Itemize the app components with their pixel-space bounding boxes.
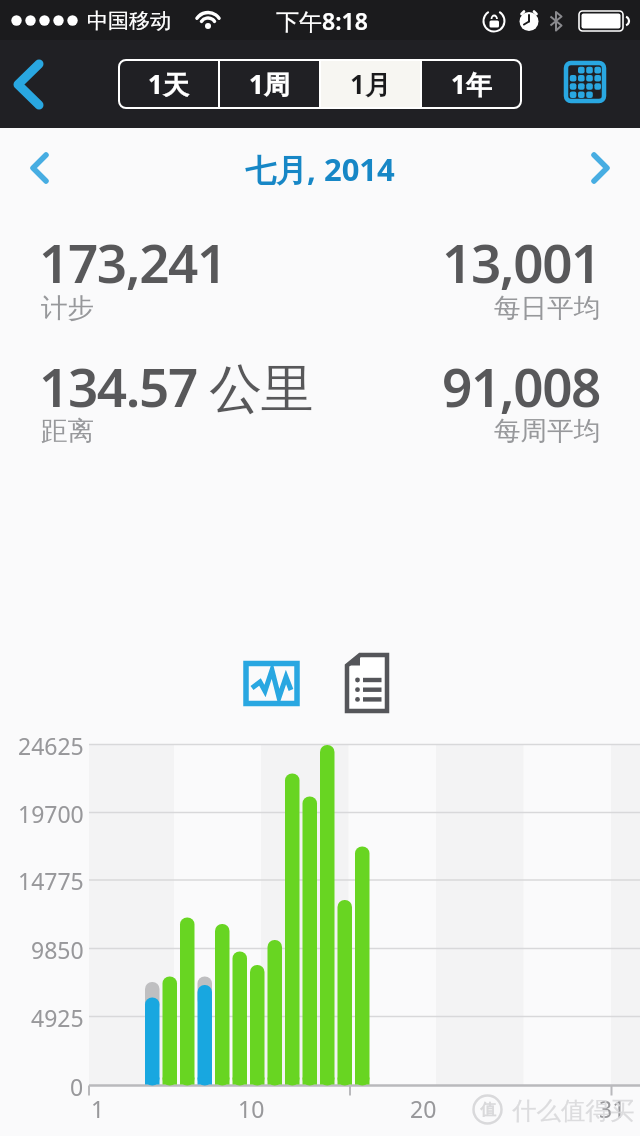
button[interactable] <box>582 144 622 192</box>
staticText: 计步 <box>41 291 94 324</box>
staticText: 下午8:18 <box>276 5 368 36</box>
staticText: 值 <box>480 1100 496 1120</box>
staticText: 19700 <box>18 798 84 829</box>
staticText: 10 <box>238 1093 265 1123</box>
staticText: 20 <box>410 1093 437 1123</box>
staticText: 七月, 2014 <box>245 148 395 190</box>
staticText: 每周平均 <box>494 414 600 447</box>
button[interactable] <box>243 658 301 708</box>
staticText: 什么值得买 <box>512 1095 635 1126</box>
button[interactable]: 1年 <box>421 59 522 109</box>
button[interactable] <box>564 61 606 103</box>
staticText: 每日平均 <box>494 291 600 324</box>
staticText: 91,008 <box>442 350 600 422</box>
staticText: 134.57 公里 <box>39 350 313 422</box>
staticText: 1 <box>91 1093 105 1123</box>
button[interactable]: 1周 <box>219 59 320 109</box>
staticText: 距离 <box>41 414 94 447</box>
button[interactable]: 1月 <box>320 59 421 109</box>
staticText: 1月 <box>350 66 391 102</box>
staticText: 31 <box>599 1093 626 1123</box>
staticText: 1周 <box>249 66 290 102</box>
button[interactable] <box>344 652 390 714</box>
staticText: 9850 <box>31 934 84 965</box>
staticText: 0 <box>70 1071 84 1102</box>
staticText: 1年 <box>451 66 492 102</box>
staticText: 13,001 <box>442 226 600 298</box>
button[interactable] <box>6 54 54 114</box>
staticText: 24625 <box>18 730 84 761</box>
button[interactable] <box>18 144 58 192</box>
staticText: 4925 <box>31 1002 84 1033</box>
staticText: 1天 <box>148 66 189 102</box>
staticText: 14775 <box>18 865 84 896</box>
button[interactable]: 1天 <box>118 59 219 109</box>
staticText: 中国移动 <box>87 8 171 34</box>
staticText: 173,241 <box>39 226 226 298</box>
